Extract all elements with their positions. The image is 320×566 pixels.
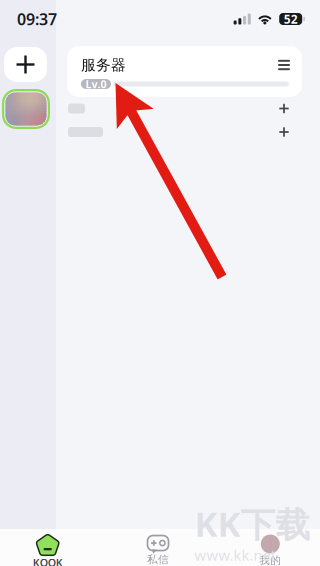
staticText: 52: [284, 11, 298, 27]
button[interactable]: Server avatar: [2, 89, 52, 129]
button[interactable]: Server menu: [272, 55, 296, 75]
button[interactable]: Add channel: [67, 120, 302, 143]
button[interactable]: Add a server: [2, 47, 52, 82]
staticText: KK下载: [194, 500, 310, 547]
button[interactable]: 我的: [221, 529, 320, 566]
staticText: 09:37: [17, 8, 57, 30]
button[interactable]: Add channel: [67, 97, 302, 120]
staticText: www.kk.net: [194, 545, 275, 565]
staticText: Lv.0: [85, 77, 106, 91]
button[interactable]: 私信: [95, 529, 221, 566]
staticText: KOOK: [33, 555, 63, 566]
staticText: 服务器: [81, 56, 126, 74]
button[interactable]: KOOK: [0, 529, 95, 566]
staticText: 私信: [147, 553, 169, 566]
staticText: 我的: [259, 554, 281, 566]
